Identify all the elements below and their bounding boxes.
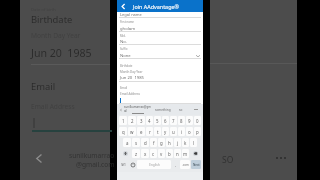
button[interactable]: Emoji <box>129 160 136 169</box>
staticText: 6 <box>164 118 167 124</box>
button[interactable]: o <box>186 127 193 136</box>
button[interactable]: Birthdate <box>117 0 203 180</box>
button[interactable]: n <box>174 149 181 158</box>
button[interactable]: Date of birth <box>20 0 110 180</box>
button[interactable]: u <box>170 127 177 136</box>
staticText: r <box>149 129 151 135</box>
staticText: .com <box>182 163 189 167</box>
button[interactable]: 7 <box>170 116 177 125</box>
staticText: @gmail.com <box>76 160 115 169</box>
button[interactable]: d <box>141 138 149 147</box>
button[interactable]: l <box>190 138 197 147</box>
button[interactable]: Space <box>137 160 171 169</box>
button[interactable]: 1 <box>119 116 127 125</box>
button[interactable]: 8 <box>178 116 185 125</box>
button[interactable]: h <box>166 138 173 147</box>
staticText: w <box>130 129 134 135</box>
staticText: o <box>188 129 191 135</box>
button[interactable]: .com <box>180 160 190 169</box>
button[interactable]: . <box>172 160 179 169</box>
button[interactable]: Back <box>117 0 129 12</box>
staticText: sunilkumarrao <box>69 151 115 160</box>
button[interactable]: r <box>146 127 153 136</box>
staticText: g <box>160 140 163 146</box>
staticText: x <box>144 151 147 157</box>
button[interactable]: i <box>178 127 185 136</box>
button[interactable]: e <box>137 127 145 136</box>
staticText: 8 <box>180 118 183 124</box>
staticText: b <box>168 151 171 157</box>
staticText: a <box>126 140 129 146</box>
button[interactable]: 9 <box>186 116 193 125</box>
staticText: h <box>168 140 171 146</box>
staticText: n <box>176 151 179 157</box>
button[interactable]: Back <box>32 151 46 165</box>
staticText: No. <box>120 39 127 45</box>
button[interactable]: m <box>182 149 189 158</box>
button[interactable]: c <box>150 149 157 158</box>
button[interactable]: More suggestions <box>188 104 203 115</box>
staticText: gholam <box>120 26 136 32</box>
button[interactable]: Email <box>117 0 203 180</box>
button[interactable]: Mid. <box>117 0 203 180</box>
staticText: Suffix <box>120 47 128 51</box>
button[interactable]: s <box>132 138 140 147</box>
button[interactable]: p <box>194 127 201 136</box>
staticText: 4 <box>148 118 151 124</box>
button[interactable]: Next <box>191 160 201 169</box>
staticText: Birthdate <box>31 13 73 26</box>
button[interactable]: b <box>166 149 173 158</box>
button[interactable]: x <box>141 149 149 158</box>
staticText: p <box>196 129 199 135</box>
button[interactable]: y <box>162 127 169 136</box>
staticText: Email Address <box>120 92 140 96</box>
button[interactable]: 6 <box>162 116 169 125</box>
staticText: so <box>179 108 183 112</box>
staticText: t <box>157 129 159 135</box>
button[interactable]: k <box>182 138 189 147</box>
button[interactable]: First name <box>117 0 203 180</box>
staticText: z <box>135 151 138 157</box>
staticText: Join AAdvantage® <box>133 3 179 10</box>
staticText: s <box>135 140 138 146</box>
staticText: f <box>153 140 155 146</box>
button[interactable]: Shift <box>119 149 131 158</box>
staticText: First name <box>120 20 134 24</box>
staticText: English <box>149 163 160 167</box>
button[interactable]: sunilkumarrao@gmail <box>124 104 152 115</box>
button[interactable]: so <box>174 104 188 115</box>
button[interactable]: a <box>123 138 131 147</box>
button[interactable]: t <box>154 127 161 136</box>
button[interactable]: q <box>119 127 127 136</box>
button[interactable]: w <box>128 127 136 136</box>
button[interactable]: v <box>158 149 165 158</box>
button[interactable]: 4 <box>146 116 153 125</box>
button[interactable]: Backspace <box>190 149 201 158</box>
button[interactable]: j <box>174 138 181 147</box>
staticText: 2 <box>131 118 134 124</box>
staticText: !#1 <box>121 163 126 167</box>
button[interactable]: Previous suggestions <box>117 104 124 115</box>
button[interactable]: 2 <box>128 116 136 125</box>
staticText: Email <box>120 86 128 90</box>
staticText: Month Day Year <box>120 70 143 74</box>
staticText: Jun 20 1985 <box>31 46 92 60</box>
staticText: Next <box>193 163 200 167</box>
button[interactable]: something <box>152 104 174 115</box>
staticText: d <box>144 140 147 146</box>
button[interactable]: Suffix <box>117 0 203 180</box>
button[interactable]: 5 <box>154 116 161 125</box>
button[interactable]: z <box>132 149 140 158</box>
button[interactable]: Symbols <box>119 160 128 169</box>
button[interactable]: 3 <box>137 116 145 125</box>
staticText: m <box>183 151 188 157</box>
button[interactable]: More options <box>272 152 290 163</box>
staticText: Jun 20 1985 <box>120 75 144 81</box>
button[interactable]: 0 <box>194 116 201 125</box>
button[interactable]: Legal name <box>117 0 203 180</box>
button[interactable]: f <box>150 138 157 147</box>
button[interactable]: g <box>158 138 165 147</box>
